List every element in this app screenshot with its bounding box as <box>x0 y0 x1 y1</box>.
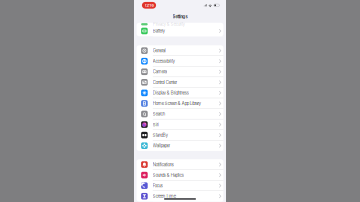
staticText: Home Screen & App Library <box>153 101 201 106</box>
button[interactable]: Battery <box>137 26 223 36</box>
staticText: Privacy & Security <box>153 22 185 27</box>
button[interactable]: Sounds & Haptics <box>137 170 223 180</box>
staticText: Settings <box>172 14 187 19</box>
staticText: Control Center <box>153 80 177 85</box>
staticText: Notifications <box>153 162 174 167</box>
button[interactable]: Wallpaper <box>137 140 223 151</box>
button[interactable]: Display & Brightness <box>137 88 223 98</box>
button[interactable]: Focus <box>137 180 223 191</box>
staticText: General <box>153 48 166 53</box>
staticText: Accessibility <box>153 58 175 64</box>
button[interactable]: Accessibility <box>137 56 223 66</box>
button[interactable]: Notifications <box>137 159 223 170</box>
staticText: Battery <box>153 28 165 34</box>
staticText: Display & Brightness <box>153 90 189 95</box>
staticText: Focus <box>153 183 163 188</box>
button[interactable]: StandBy <box>137 130 223 140</box>
button[interactable]: General <box>137 45 223 56</box>
staticText: Search <box>153 111 165 117</box>
button[interactable]: Screen Time <box>137 191 223 201</box>
staticText: Siri <box>153 122 159 127</box>
button[interactable]: Control Center <box>137 77 223 88</box>
staticText: Wallpaper <box>153 143 170 148</box>
staticText: StandBy <box>153 132 168 138</box>
staticText: Sounds & Haptics <box>153 172 184 178</box>
button[interactable]: Camera <box>137 66 223 77</box>
staticText: Camera <box>153 69 167 74</box>
staticText: Screen Time <box>153 194 176 199</box>
button[interactable]: Siri <box>137 119 223 130</box>
staticText: 12:16 <box>144 3 153 8</box>
button[interactable]: Search <box>137 109 223 119</box>
button[interactable]: Home Screen & App Library <box>137 98 223 109</box>
